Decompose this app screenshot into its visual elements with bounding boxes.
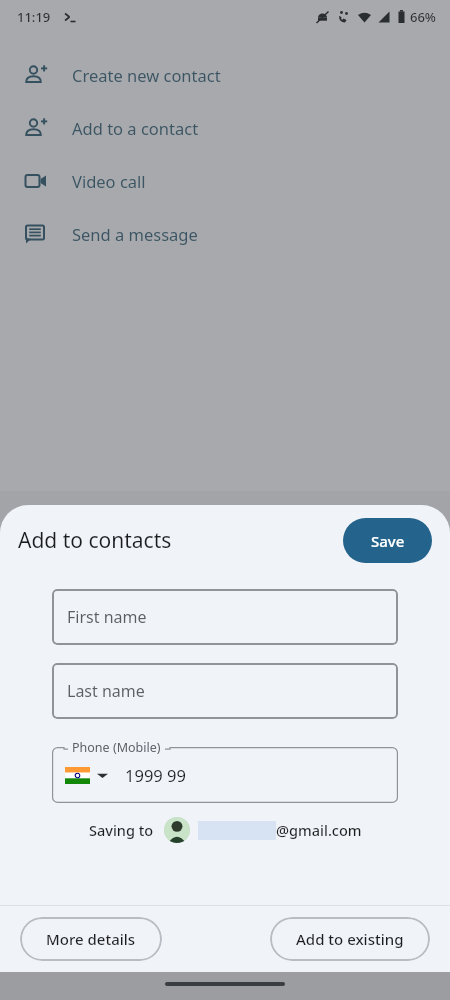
staticText: Send a message — [72, 223, 198, 245]
button[interactable]: Video call — [0, 154, 450, 207]
staticText: Last name — [67, 680, 145, 702]
staticText: 1999 99 — [125, 764, 186, 786]
staticText: Add to contacts — [18, 526, 172, 555]
staticText: Save — [371, 531, 405, 551]
staticText: Send a message — [72, 223, 198, 245]
button[interactable]: Send a message — [0, 207, 450, 260]
button[interactable]: Save — [343, 518, 432, 563]
staticText: Saving to — [89, 820, 154, 840]
staticText: Video call — [72, 170, 146, 192]
button[interactable]: Video call — [0, 154, 450, 207]
button[interactable]: 1999 99 — [52, 747, 398, 803]
staticText: 11:19 — [17, 8, 51, 26]
staticText: Add to a contact — [72, 117, 199, 139]
staticText: 66% — [410, 8, 436, 26]
staticText: Add to a contact — [72, 117, 199, 139]
button[interactable]: Send a message — [0, 207, 450, 260]
button[interactable]: Add to a contact — [0, 101, 450, 154]
staticText: Video call — [72, 170, 146, 192]
staticText: 66% — [410, 8, 436, 26]
button[interactable]: Add to a contact — [0, 101, 450, 154]
staticText: More details — [46, 929, 136, 949]
button[interactable]: Add to existing — [270, 917, 430, 961]
button[interactable]: Last name — [52, 663, 398, 719]
staticText: 11:19 — [17, 8, 51, 26]
staticText: First name — [67, 606, 147, 628]
staticText: Phone (Mobile) — [72, 739, 161, 756]
button[interactable]: Create new contact — [0, 48, 450, 101]
button[interactable]: Create new contact — [0, 48, 450, 101]
staticText: Create new contact — [72, 64, 221, 86]
staticText: @gmail.com — [276, 820, 362, 840]
button[interactable]: More details — [20, 917, 162, 961]
button[interactable]: First name — [52, 589, 398, 645]
staticText: Add to existing — [296, 929, 404, 949]
staticText: Create new contact — [72, 64, 221, 86]
